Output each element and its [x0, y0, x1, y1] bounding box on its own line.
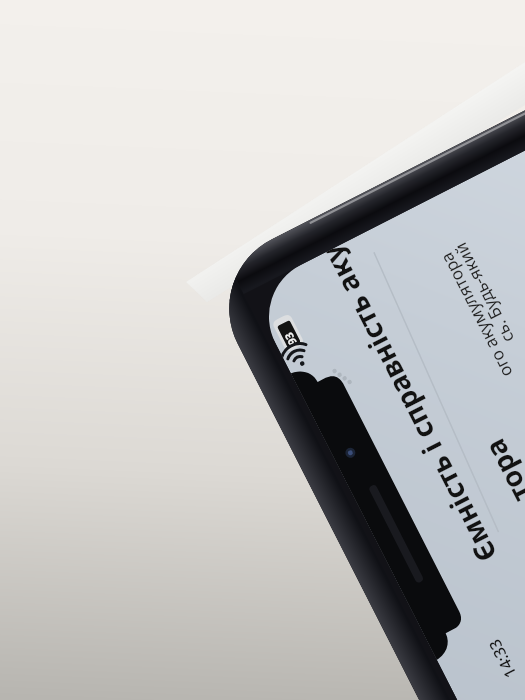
other: Photo of a phone showing battery health …: [0, 0, 525, 700]
